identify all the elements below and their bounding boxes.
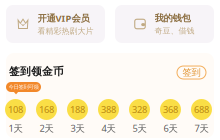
staticText: 今日签到可领: [8, 84, 38, 90]
staticText: 签到: [182, 67, 200, 78]
staticText: 4天: [101, 122, 115, 134]
button[interactable]: 签到: [177, 66, 206, 79]
staticText: 3天: [70, 122, 84, 134]
button[interactable]: 开通VIP会员: [6, 5, 105, 43]
staticText: 168: [39, 103, 54, 116]
staticText: 388: [101, 103, 116, 116]
staticText: 奇豆、借钱: [154, 26, 194, 36]
staticText: 开通VIP会员: [37, 12, 89, 24]
staticText: 108: [8, 103, 23, 116]
staticText: 签到领金币: [9, 65, 64, 78]
staticText: 368: [163, 103, 178, 116]
staticText: 看精彩热剧大片: [37, 26, 93, 36]
staticText: 5天: [132, 122, 146, 134]
staticText: 2天: [39, 122, 53, 134]
staticText: 688: [194, 103, 209, 116]
staticText: 1天: [8, 122, 22, 134]
button[interactable]: 我的钱包: [115, 5, 214, 43]
staticText: 我的钱包: [154, 12, 190, 24]
staticText: 6天: [163, 122, 177, 134]
staticText: 7天: [194, 122, 208, 134]
staticText: 328: [132, 103, 147, 116]
staticText: 188: [70, 103, 85, 116]
